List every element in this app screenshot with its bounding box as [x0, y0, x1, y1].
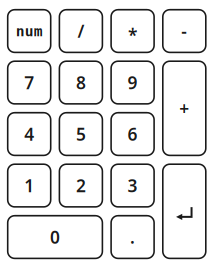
staticText: 0	[50, 225, 60, 248]
staticText: 1	[24, 174, 34, 197]
button[interactable]: Minus	[163, 10, 206, 52]
staticText: 8	[76, 71, 86, 94]
button[interactable]: 9	[111, 61, 154, 104]
staticText: -	[181, 19, 187, 42]
button[interactable]: num	[8, 10, 51, 52]
staticText: *	[128, 23, 137, 46]
button[interactable]: 3	[111, 164, 154, 207]
button[interactable]: 4	[8, 113, 51, 155]
button[interactable]: 8	[59, 61, 102, 104]
button[interactable]: 5	[59, 113, 102, 155]
button[interactable]: Multiply	[111, 10, 154, 52]
button[interactable]: Decimal point	[111, 216, 154, 258]
staticText: .	[130, 225, 135, 248]
button[interactable]: 6	[111, 113, 154, 155]
button[interactable]: /	[59, 10, 102, 52]
staticText: 9	[128, 71, 138, 94]
button[interactable]: 0	[8, 216, 102, 258]
staticText: 7	[24, 71, 34, 94]
staticText: 5	[76, 122, 86, 145]
staticText: 3	[128, 174, 138, 197]
button[interactable]: Plus	[163, 61, 206, 155]
staticText: 4	[24, 122, 34, 145]
button[interactable]: 1	[8, 164, 51, 207]
staticText: num	[16, 23, 43, 39]
staticText: /	[77, 19, 84, 42]
button[interactable]: Return	[163, 164, 206, 258]
button[interactable]: 7	[8, 61, 51, 104]
staticText: +	[179, 97, 189, 120]
staticText: 6	[128, 122, 138, 145]
staticText: 2	[76, 174, 86, 197]
button[interactable]: 2	[59, 164, 102, 207]
